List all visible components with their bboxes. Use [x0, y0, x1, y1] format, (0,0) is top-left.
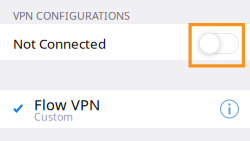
button[interactable]: VPN on/off: [199, 33, 239, 54]
staticText: Flow VPN: [34, 95, 100, 114]
button[interactable]: Flow VPN: [0, 90, 250, 128]
staticText: Custom: [34, 109, 73, 124]
staticText: VPN CONFIGURATIONS: [13, 8, 130, 23]
staticText: Not Connected: [13, 35, 106, 52]
